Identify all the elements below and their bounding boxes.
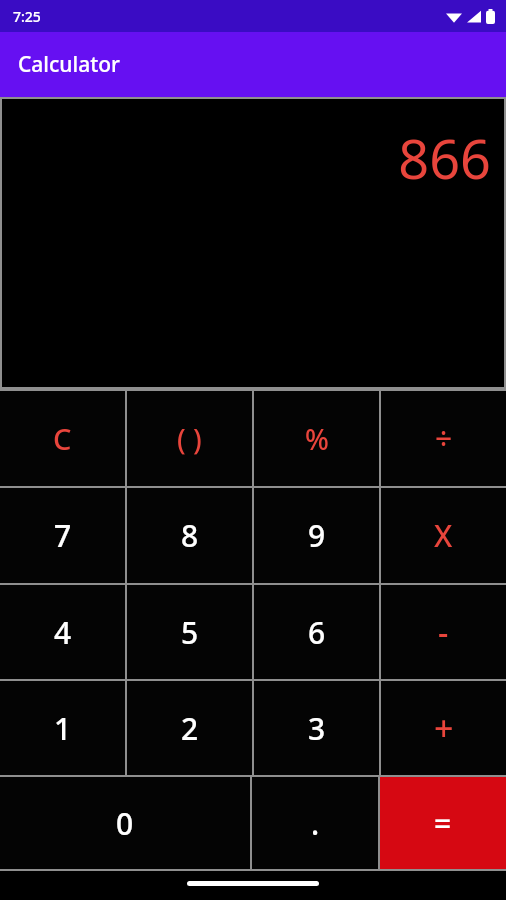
button[interactable]: % <box>254 391 379 486</box>
button[interactable]: + <box>381 681 506 775</box>
staticText: - <box>438 610 449 654</box>
button[interactable]: 0 <box>0 777 250 869</box>
staticText: 7:25 <box>13 7 41 26</box>
button[interactable]: 8 <box>127 488 252 583</box>
staticText: X <box>434 515 453 556</box>
button[interactable]: C <box>0 391 125 486</box>
staticText: 6 <box>308 612 326 653</box>
button[interactable]: X <box>381 488 506 583</box>
button[interactable]: 1 <box>0 681 125 775</box>
button[interactable]: 9 <box>254 488 379 583</box>
staticText: 1 <box>54 708 72 749</box>
button[interactable]: ÷ <box>381 391 506 486</box>
staticText: 0 <box>116 803 134 844</box>
button[interactable]: 5 <box>127 585 252 679</box>
button[interactable]: . <box>252 777 378 869</box>
staticText: 9 <box>308 515 326 556</box>
staticText: 5 <box>181 612 199 653</box>
staticText: 3 <box>308 708 326 749</box>
staticText: . <box>311 803 320 844</box>
staticText: + <box>434 705 454 751</box>
button[interactable]: 2 <box>127 681 252 775</box>
button[interactable]: = <box>380 777 506 869</box>
staticText: ÷ <box>435 418 453 459</box>
button[interactable]: 7 <box>0 488 125 583</box>
staticText: 4 <box>54 612 72 653</box>
staticText: ( ) <box>177 420 202 458</box>
staticText: = <box>434 803 452 844</box>
button[interactable]: 3 <box>254 681 379 775</box>
button[interactable]: - <box>381 585 506 679</box>
staticText: 8 <box>181 515 199 556</box>
staticText: % <box>305 420 329 458</box>
button[interactable]: 4 <box>0 585 125 679</box>
staticText: C <box>53 419 72 458</box>
staticText: Calculator <box>18 50 120 79</box>
staticText: 2 <box>181 708 199 749</box>
staticText: 866 <box>398 121 491 195</box>
button[interactable]: ( ) <box>127 391 252 486</box>
button[interactable]: 6 <box>254 585 379 679</box>
staticText: 7 <box>54 515 72 556</box>
